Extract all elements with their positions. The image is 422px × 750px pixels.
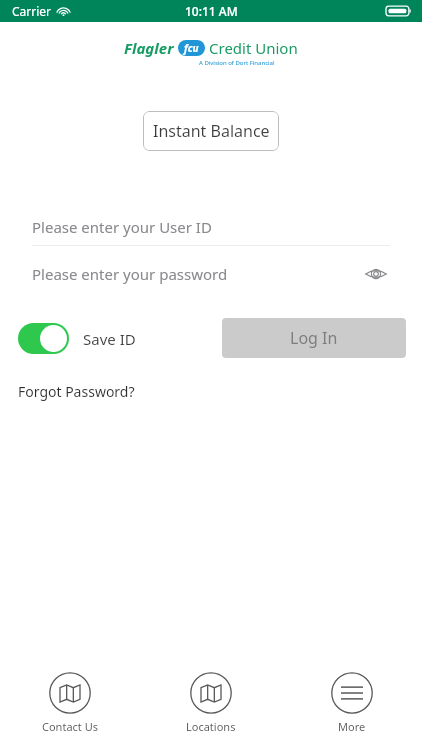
- button[interactable]: Log In: [222, 318, 406, 358]
- staticText: Credit Union: [209, 38, 298, 58]
- button[interactable]: Instant Balance: [143, 111, 279, 151]
- staticText: 10:11 AM: [185, 3, 238, 19]
- button[interactable]: Forgot Password?: [18, 382, 135, 401]
- staticText: Locations: [186, 719, 236, 734]
- button[interactable]: Contact Us: [0, 668, 140, 734]
- button[interactable]: Please enter your password: [32, 256, 390, 292]
- staticText: Carrier: [12, 3, 52, 19]
- staticText: Flagler: [124, 38, 174, 58]
- button[interactable]: Locations: [140, 668, 281, 734]
- staticText: A Division of Dort Financial: [199, 59, 275, 67]
- staticText: Instant Balance: [153, 120, 270, 142]
- staticText: Log In: [290, 327, 338, 349]
- staticText: fcu: [184, 41, 199, 55]
- staticText: Please enter your User ID: [32, 217, 212, 237]
- staticText: Save ID: [83, 329, 136, 349]
- button[interactable]: Please enter your User ID: [32, 209, 390, 246]
- staticText: Contact Us: [42, 719, 98, 734]
- button[interactable]: Save ID: [18, 323, 136, 354]
- staticText: Forgot Password?: [18, 382, 135, 401]
- button[interactable]: Show password: [362, 260, 390, 288]
- button[interactable]: More: [281, 668, 422, 734]
- staticText: More: [338, 719, 366, 734]
- staticText: Please enter your password: [32, 264, 228, 284]
